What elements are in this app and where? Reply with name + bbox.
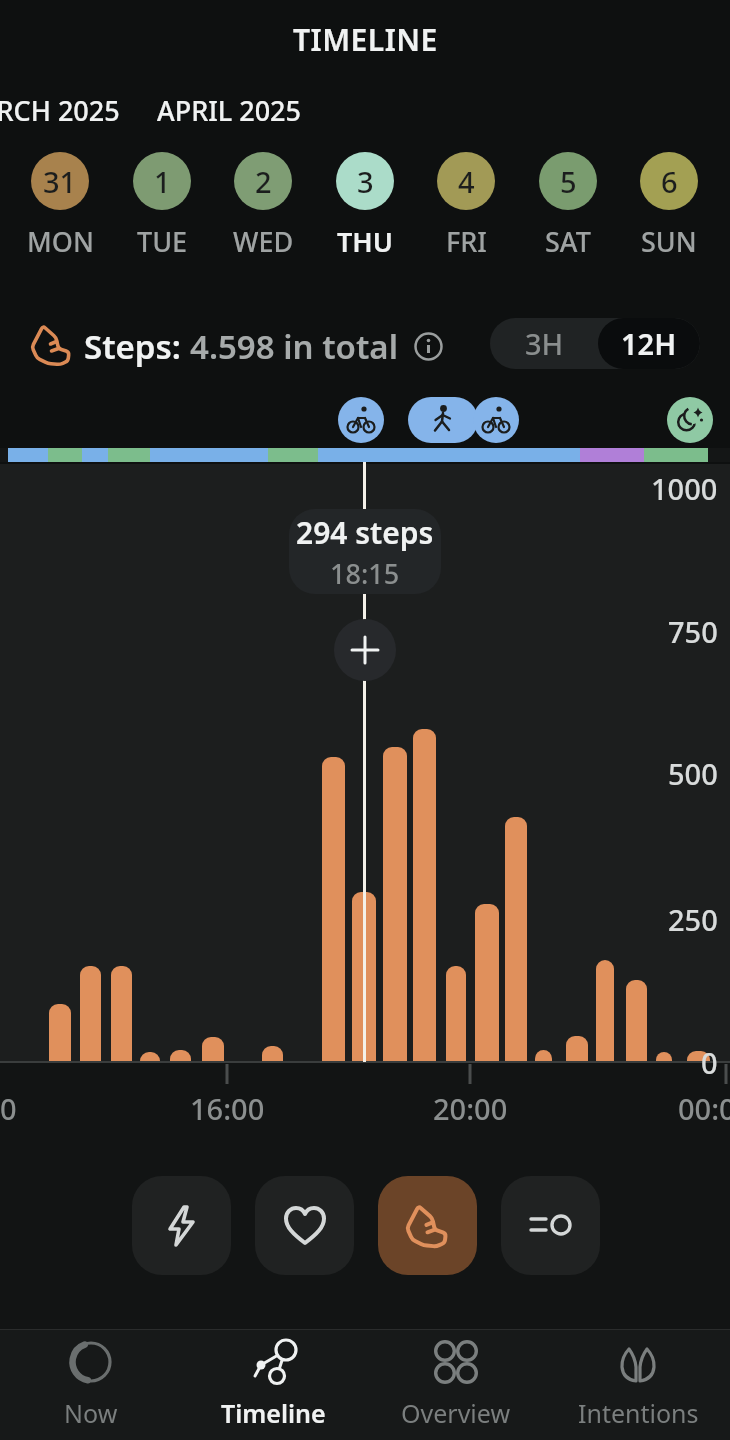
button[interactable]: 12H bbox=[598, 318, 700, 369]
staticText: TIMELINE bbox=[293, 19, 438, 60]
staticText: APRIL 2025 bbox=[157, 92, 301, 129]
staticText: 294 steps bbox=[296, 512, 434, 553]
button[interactable] bbox=[338, 397, 384, 443]
staticText: FRI bbox=[446, 223, 487, 260]
button[interactable] bbox=[334, 619, 396, 681]
button[interactable] bbox=[255, 1176, 354, 1275]
staticText: 18:15 bbox=[330, 555, 400, 592]
staticText: 750 bbox=[668, 612, 718, 651]
staticText: 1 bbox=[154, 162, 171, 201]
button[interactable] bbox=[378, 1176, 477, 1275]
staticText: Steps: bbox=[84, 324, 190, 369]
staticText: 2 bbox=[255, 162, 272, 201]
staticText: 16:00 bbox=[190, 1089, 265, 1128]
staticText: 250 bbox=[668, 900, 718, 939]
button[interactable]: 2 bbox=[213, 152, 313, 260]
staticText: Now bbox=[64, 1396, 118, 1430]
staticText: 4 bbox=[458, 162, 475, 201]
staticText: 5 bbox=[560, 162, 577, 201]
button[interactable]: 4 bbox=[416, 152, 516, 260]
staticText: 12H bbox=[621, 324, 677, 363]
button[interactable]: 1 bbox=[112, 152, 212, 260]
staticText: 500 bbox=[668, 754, 718, 793]
staticText: 20:00 bbox=[433, 1089, 508, 1128]
staticText: WED bbox=[233, 223, 294, 260]
staticText: Intentions bbox=[578, 1396, 699, 1430]
button[interactable] bbox=[473, 397, 519, 443]
button[interactable] bbox=[667, 397, 713, 443]
button[interactable]: 3 bbox=[315, 152, 415, 260]
staticText: MARCH 2025 bbox=[0, 92, 120, 129]
staticText: Overview bbox=[401, 1396, 511, 1430]
button[interactable]: Intentions bbox=[558, 1336, 718, 1430]
staticText: 0 bbox=[0, 1089, 17, 1128]
staticText: THU bbox=[337, 223, 393, 260]
staticText: 00:00 bbox=[678, 1089, 730, 1128]
staticText: TUE bbox=[137, 223, 188, 260]
button[interactable]: 31 bbox=[10, 152, 110, 260]
staticText: 3 bbox=[357, 162, 374, 201]
button[interactable]: Now bbox=[11, 1336, 171, 1430]
staticText: 0 bbox=[701, 1043, 718, 1082]
button[interactable]: 6 bbox=[619, 152, 719, 260]
button[interactable]: 5 bbox=[518, 152, 618, 260]
staticText: SUN bbox=[641, 223, 697, 260]
button[interactable] bbox=[501, 1176, 600, 1275]
staticText: 4.598 in total bbox=[190, 324, 398, 369]
button[interactable] bbox=[408, 397, 478, 443]
button[interactable] bbox=[132, 1176, 231, 1275]
staticText: Timeline bbox=[221, 1396, 326, 1430]
button[interactable]: Overview bbox=[376, 1336, 536, 1430]
staticText: MON bbox=[27, 223, 94, 260]
staticText: 1000 bbox=[651, 469, 718, 508]
button[interactable]: Timeline bbox=[193, 1336, 353, 1430]
staticText: 31 bbox=[43, 162, 77, 201]
staticText: 6 bbox=[661, 162, 678, 201]
staticText: SAT bbox=[545, 223, 591, 260]
staticText: 3H bbox=[525, 324, 564, 363]
button[interactable]: 3H bbox=[490, 318, 598, 369]
